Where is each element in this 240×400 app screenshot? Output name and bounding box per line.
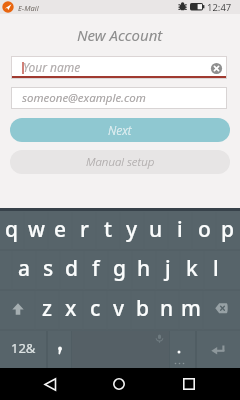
staticText: l: [213, 254, 219, 283]
button[interactable]: j: [156, 249, 180, 288]
staticText: k: [186, 254, 198, 283]
button[interactable]: k: [180, 249, 204, 288]
staticText: u: [149, 215, 163, 244]
button[interactable]: e: [48, 210, 72, 249]
button[interactable]: [177, 368, 201, 400]
button[interactable]: b: [131, 289, 155, 328]
staticText: n: [160, 294, 174, 323]
button[interactable]: c: [83, 289, 107, 328]
staticText: p: [221, 215, 235, 244]
button[interactable]: x: [59, 289, 83, 328]
staticText: j: [165, 254, 171, 283]
staticText: t: [104, 215, 113, 244]
button[interactable]: d: [60, 249, 84, 288]
staticText: a: [18, 254, 31, 283]
button[interactable]: 12&: [0, 329, 47, 367]
staticText: Manual setup: [86, 154, 155, 170]
button[interactable]: [196, 331, 240, 368]
button[interactable]: [203, 289, 240, 328]
staticText: c: [90, 294, 101, 323]
button[interactable]: l: [204, 249, 228, 288]
button[interactable]: s: [36, 249, 60, 288]
staticText: r: [80, 215, 89, 244]
button[interactable]: [47, 329, 72, 367]
staticText: s: [43, 254, 54, 283]
button[interactable]: h: [132, 249, 156, 288]
button[interactable]: t: [96, 210, 120, 249]
button[interactable]: [0, 289, 35, 328]
button[interactable]: [107, 368, 131, 400]
staticText: Next: [108, 122, 132, 138]
button[interactable]: u: [144, 210, 168, 249]
staticText: Your name: [23, 59, 81, 75]
button[interactable]: Manual setup: [10, 150, 230, 174]
staticText: someone@example.com: [22, 90, 146, 106]
staticText: E-Mail: [18, 3, 39, 13]
staticText: New Account: [77, 25, 163, 44]
button[interactable]: g: [108, 249, 132, 288]
button[interactable]: v: [107, 289, 131, 328]
staticText: g: [113, 254, 127, 283]
button[interactable]: y: [120, 210, 144, 249]
staticText: q: [5, 215, 19, 244]
button[interactable]: r: [72, 210, 96, 249]
staticText: d: [65, 254, 79, 283]
button[interactable]: someone@example.com: [11, 87, 227, 109]
staticText: o: [198, 215, 211, 244]
staticText: f: [92, 254, 100, 283]
button[interactable]: f: [84, 249, 108, 288]
button[interactable]: w: [24, 210, 48, 249]
button[interactable]: m: [179, 289, 203, 328]
staticText: w: [28, 215, 45, 244]
button[interactable]: [38, 368, 62, 400]
button[interactable]: n: [155, 289, 179, 328]
staticText: 12&: [11, 339, 36, 357]
button[interactable]: Next: [10, 118, 230, 142]
button[interactable]: a: [12, 249, 36, 288]
button[interactable]: i: [168, 210, 192, 249]
staticText: z: [42, 294, 53, 323]
staticText: y: [126, 215, 138, 244]
button[interactable]: z: [35, 289, 59, 328]
staticText: v: [113, 294, 125, 323]
staticText: m: [181, 294, 201, 323]
staticText: 12:47: [207, 1, 232, 14]
button[interactable]: o: [192, 210, 216, 249]
staticText: x: [65, 294, 77, 323]
staticText: b: [136, 294, 150, 323]
button[interactable]: Your name: [11, 56, 227, 79]
staticText: e: [54, 215, 67, 244]
button[interactable]: p: [216, 210, 240, 249]
button[interactable]: q: [0, 210, 24, 249]
staticText: h: [137, 254, 151, 283]
staticText: i: [177, 215, 183, 244]
button[interactable]: [169, 331, 196, 368]
